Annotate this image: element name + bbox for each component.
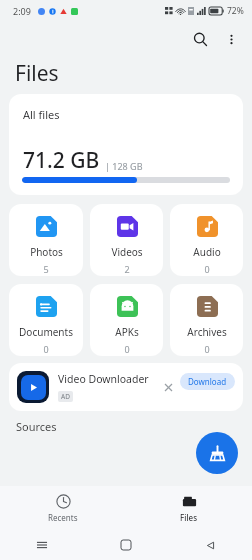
staticText: 2	[124, 263, 130, 275]
staticText: 5	[43, 263, 49, 275]
button[interactable]: Download	[180, 373, 235, 390]
staticText: | 128 GB	[105, 160, 143, 172]
button[interactable]: Video Downloader	[9, 363, 243, 411]
button[interactable]: Files	[126, 486, 252, 530]
button[interactable]: Audio	[170, 204, 243, 276]
button[interactable]: Home	[84, 530, 168, 560]
staticText: 72%	[227, 5, 244, 17]
staticText: Audio	[193, 245, 221, 259]
staticText: 2:09	[13, 5, 31, 17]
staticText: 0	[204, 263, 210, 275]
button[interactable]: Archives	[170, 284, 243, 356]
staticText: Recents	[48, 512, 78, 523]
button[interactable]: Documents	[9, 284, 83, 356]
staticText: AD	[61, 392, 70, 401]
button[interactable]: Recent apps	[0, 530, 84, 560]
staticText: Video Downloader	[58, 372, 149, 386]
button[interactable]: Search	[186, 25, 214, 53]
staticText: Archives	[187, 325, 227, 339]
staticText: 0	[204, 343, 210, 355]
button[interactable]: Back	[168, 530, 252, 560]
staticText: 0	[124, 343, 130, 355]
staticText: Videos	[111, 245, 143, 259]
staticText: APKs	[115, 325, 139, 339]
staticText: Documents	[19, 325, 73, 339]
button[interactable]: Videos	[90, 204, 163, 276]
button[interactable]: Photos	[9, 204, 83, 276]
staticText: Files	[15, 59, 59, 88]
button[interactable]: More options	[218, 26, 244, 52]
button[interactable]: Close ad	[160, 379, 176, 395]
button[interactable]: All files	[9, 94, 243, 195]
staticText: 71.2 GB	[23, 146, 100, 175]
staticText: 0	[43, 343, 49, 355]
staticText: Files	[180, 512, 198, 523]
staticText: Sources	[16, 419, 57, 434]
button[interactable]: Recents	[0, 486, 126, 530]
button[interactable]: APKs	[90, 284, 163, 356]
staticText: Download	[188, 376, 227, 387]
staticText: All files	[23, 107, 60, 122]
staticText: Photos	[30, 245, 63, 259]
button[interactable]: Clean up storage	[196, 432, 238, 474]
